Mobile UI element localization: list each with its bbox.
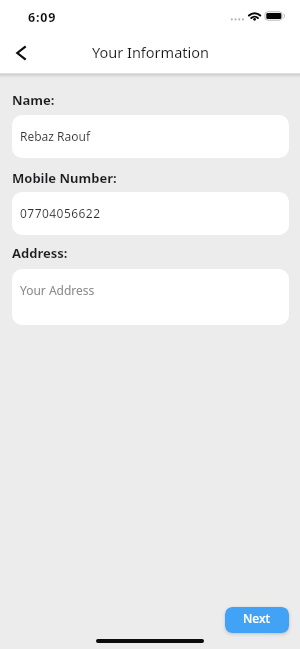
staticText: 6:09 — [28, 9, 57, 26]
button[interactable]: 07704056622 — [12, 192, 289, 235]
staticText: Next — [243, 610, 271, 626]
staticText: Rebaz Raouf — [20, 128, 91, 144]
staticText: Mobile Number: — [12, 169, 117, 187]
button[interactable]: Rebaz Raouf — [12, 115, 289, 158]
staticText: Address: — [12, 244, 68, 262]
staticText: Your Address — [20, 282, 95, 298]
button[interactable]: Next — [225, 607, 289, 633]
button[interactable]: Your Address — [12, 269, 289, 325]
staticText: 07704056622 — [20, 205, 101, 221]
staticText: Name: — [12, 91, 55, 109]
staticText: Your Information — [92, 42, 209, 62]
button[interactable]: Back — [3, 35, 39, 71]
